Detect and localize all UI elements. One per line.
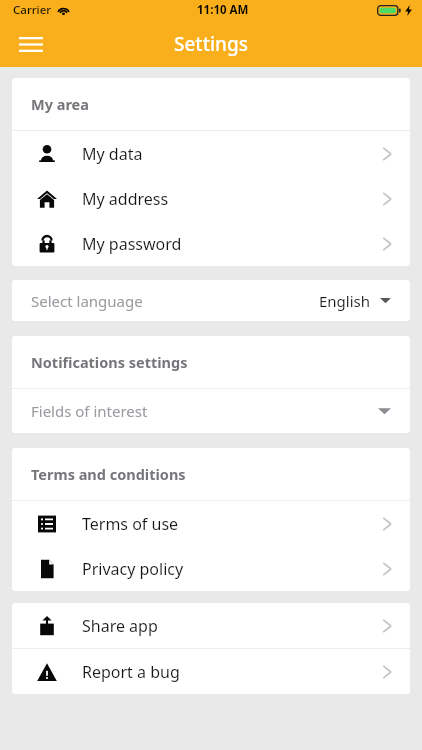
staticText: Carrier	[13, 2, 52, 18]
staticText: Settings	[174, 31, 248, 57]
staticText: My password	[82, 233, 182, 255]
staticText: 11:10 AM	[197, 2, 249, 18]
staticText: English	[319, 291, 371, 311]
button[interactable]: Privacy policy	[12, 546, 410, 591]
button[interactable]: Fields of interest	[12, 389, 410, 433]
button[interactable]: My address	[12, 176, 410, 221]
button[interactable]: Select language	[12, 280, 410, 321]
staticText: Share app	[82, 615, 158, 637]
button[interactable]: Share app	[12, 603, 410, 648]
staticText: Terms and conditions	[31, 464, 186, 484]
staticText: Privacy policy	[82, 558, 184, 580]
button[interactable]: Terms of use	[12, 501, 410, 546]
button[interactable]: My data	[12, 131, 410, 176]
staticText: My data	[82, 143, 143, 165]
button[interactable]: Report a bug	[12, 649, 410, 694]
button[interactable]: My password	[12, 221, 410, 266]
staticText: Select language	[31, 291, 143, 311]
staticText: Terms of use	[82, 513, 179, 535]
staticText: My area	[31, 94, 89, 114]
staticText: Report a bug	[82, 661, 180, 683]
staticText: Fields of interest	[31, 401, 148, 421]
button[interactable]: Open navigation menu	[9, 22, 53, 66]
staticText: Notifications settings	[31, 352, 188, 372]
staticText: My address	[82, 188, 169, 210]
